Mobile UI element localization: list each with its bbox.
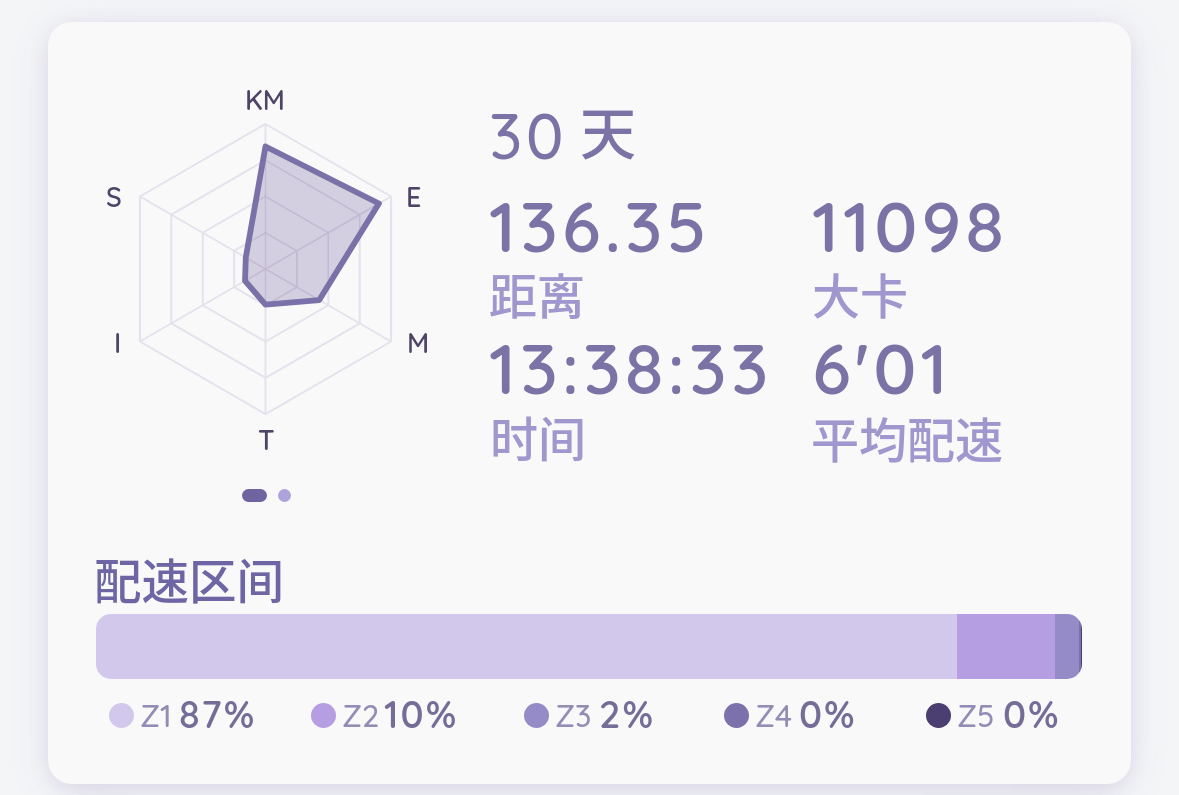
staticText: 平均配速 [811,402,1004,472]
staticText: 11098 [812,181,1008,270]
staticText: Z4 [755,696,793,735]
staticText: Z2 [342,696,380,735]
button[interactable]: Pace zone distribution [96,614,1082,679]
button[interactable] [51,691,241,735]
staticText: 2% [599,690,655,738]
staticText: 13:38:33 [489,323,773,412]
button[interactable] [666,691,856,735]
staticText: 天 [580,89,636,170]
button[interactable] [869,691,1059,735]
staticText: 时间 [490,401,587,471]
staticText: 6'01 [812,323,952,412]
staticText: I [114,326,122,360]
staticText: Z3 [555,696,592,735]
staticText: T [258,423,275,457]
staticText: 配速区间 [94,544,284,613]
staticText: 距离 [489,258,586,328]
staticText: KM [245,83,286,117]
staticText: E [406,180,422,214]
button[interactable] [466,691,656,735]
staticText: 0% [799,690,857,738]
button[interactable]: Page 1 [242,489,267,502]
staticText: 10% [384,690,459,738]
staticText: 136.35 [489,181,711,270]
staticText: M [407,326,430,360]
staticText: Z1 [140,696,172,735]
staticText: S [106,180,122,214]
button[interactable]: Page 2 [278,489,291,502]
staticText: 0% [1003,690,1061,738]
staticText: 大卡 [812,258,909,328]
staticText: Z5 [957,696,995,735]
staticText: 30 [489,96,568,175]
button[interactable] [48,22,1131,784]
button[interactable] [253,691,443,735]
staticText: 87% [179,690,257,738]
